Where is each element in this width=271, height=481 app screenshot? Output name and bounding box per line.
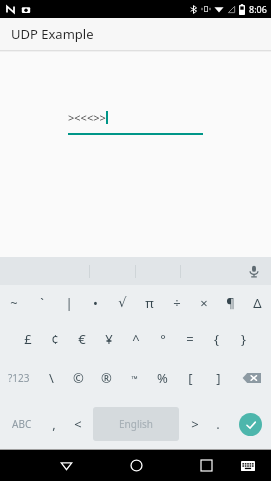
button[interactable]: Δ (244, 285, 271, 320)
staticText: ÷ (173, 294, 181, 312)
button[interactable]: English (93, 407, 179, 441)
staticText: ¢ (51, 330, 59, 348)
button[interactable]: ` (28, 285, 55, 320)
staticText: ?123 (8, 371, 30, 385)
button[interactable]: > (182, 399, 207, 449)
button[interactable]: Recent apps (190, 450, 223, 481)
staticText: \ (49, 369, 54, 387)
staticText: . (216, 415, 220, 433)
button[interactable]: ~ (0, 285, 28, 320)
button[interactable]: × (190, 285, 217, 320)
button[interactable]: , (43, 399, 65, 449)
button[interactable]: Switch keyboard (231, 450, 264, 481)
staticText: € (78, 330, 86, 348)
button[interactable]: ° (149, 320, 176, 357)
button[interactable]: • (82, 285, 109, 320)
button[interactable]: . (207, 399, 229, 449)
button[interactable]: √ (109, 285, 136, 320)
staticText: } (241, 330, 246, 348)
staticText: > (191, 415, 199, 433)
button[interactable]: } (230, 320, 257, 357)
staticText: ¥ (105, 330, 113, 348)
button[interactable]: = (176, 320, 203, 357)
staticText: ° (160, 330, 166, 348)
staticText: π (145, 294, 154, 312)
staticText: % (157, 369, 168, 387)
button[interactable]: £ (14, 320, 41, 357)
staticText: Δ (253, 294, 262, 312)
staticText: ™ (131, 373, 138, 384)
staticText: √ (118, 295, 127, 310)
button[interactable]: < (65, 399, 90, 449)
button[interactable]: Voice input (246, 263, 262, 279)
button[interactable]: ] (204, 357, 232, 399)
staticText: ~ (10, 294, 18, 312)
button[interactable]: ® (92, 357, 120, 399)
button[interactable]: ÷ (163, 285, 190, 320)
button[interactable]: | (55, 285, 82, 320)
button[interactable]: © (65, 357, 92, 399)
staticText: < (74, 415, 82, 433)
staticText: ` (40, 294, 44, 312)
staticText: | (65, 294, 73, 312)
button[interactable]: ABC (0, 399, 43, 449)
button[interactable]: \ (38, 357, 65, 399)
staticText: [ (188, 369, 193, 387)
staticText: 8:06 (249, 3, 267, 15)
button[interactable]: Backspace (232, 357, 271, 399)
staticText: ^ (132, 330, 140, 348)
button[interactable]: ™ (120, 357, 148, 399)
button[interactable]: € (68, 320, 95, 357)
staticText: ¶ (226, 294, 235, 312)
staticText: ] (216, 369, 221, 387)
staticText: ><<<>> (68, 110, 106, 125)
button[interactable]: Home (120, 450, 153, 481)
button[interactable]: { (203, 320, 230, 357)
button[interactable]: [ (176, 357, 204, 399)
button[interactable]: ¥ (95, 320, 122, 357)
button[interactable]: % (148, 357, 176, 399)
staticText: £ (24, 330, 32, 348)
staticText: ® (101, 369, 112, 387)
staticText: , (52, 415, 56, 433)
button[interactable]: π (136, 285, 163, 320)
button[interactable]: ^ (122, 320, 149, 357)
staticText: UDP Example (11, 25, 94, 43)
button[interactable]: ¶ (217, 285, 244, 320)
staticText: { (214, 330, 219, 348)
staticText: • (93, 294, 98, 312)
button[interactable]: ¢ (41, 320, 68, 357)
button[interactable]: Back (50, 450, 83, 481)
staticText: English (119, 417, 154, 431)
button[interactable]: Enter (229, 399, 271, 449)
staticText: = (186, 330, 194, 348)
staticText: × (200, 294, 208, 312)
button[interactable]: ?123 (0, 357, 38, 399)
staticText: © (73, 369, 84, 387)
staticText: ABC (12, 417, 32, 431)
